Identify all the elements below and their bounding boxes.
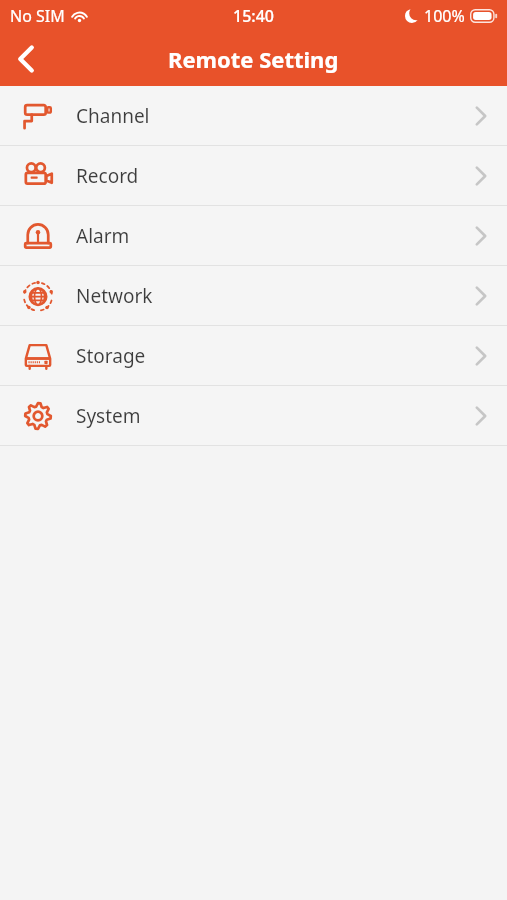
staticText: No SIM [10,5,65,27]
button[interactable]: Channel [0,86,507,145]
button[interactable]: System [0,386,507,445]
staticText: 15:40 [233,5,274,27]
staticText: Storage [76,343,455,369]
staticText: Remote Setting [168,44,339,74]
staticText: Network [76,283,455,309]
button[interactable]: Back [0,33,52,85]
staticText: System [76,403,455,429]
button[interactable]: Network [0,266,507,325]
staticText: Channel [76,103,455,129]
button[interactable]: Record [0,146,507,205]
staticText: Record [76,163,455,189]
staticText: 100% [424,5,465,27]
button[interactable]: Alarm [0,206,507,265]
button[interactable]: Storage [0,326,507,385]
staticText: Alarm [76,223,455,249]
